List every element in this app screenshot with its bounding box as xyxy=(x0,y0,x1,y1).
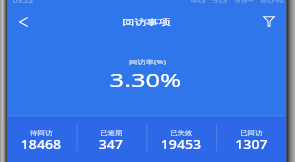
staticText: 已失效 xyxy=(170,129,193,137)
button[interactable] xyxy=(216,116,286,162)
staticText: 已逾期 xyxy=(100,129,123,137)
button[interactable]: Back xyxy=(9,8,37,36)
staticText: 3.30% xyxy=(110,68,182,93)
staticText: 回访率(%) xyxy=(129,58,166,66)
button[interactable] xyxy=(76,116,146,162)
button[interactable]: 回访事项 xyxy=(107,8,187,36)
staticText: 已回访 xyxy=(240,129,263,137)
staticText: 09:22 xyxy=(13,0,33,6)
staticText: 18468 xyxy=(21,136,62,153)
staticText: 1307 xyxy=(235,136,268,153)
staticText: 回访事项 xyxy=(122,17,172,27)
button[interactable] xyxy=(7,116,77,162)
staticText: 19453 xyxy=(161,136,202,153)
button[interactable]: Filter xyxy=(255,7,283,35)
staticText: 待回访 xyxy=(30,129,53,137)
staticText: 4G 5G 99+ 86% xyxy=(190,0,286,6)
staticText: 347 xyxy=(99,136,123,153)
button[interactable] xyxy=(146,116,216,162)
